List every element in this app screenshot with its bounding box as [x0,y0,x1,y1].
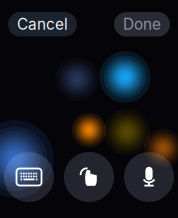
button[interactable]: Cancel [8,12,77,37]
staticText: Done [123,15,161,34]
button[interactable]: Scribble [64,152,114,202]
button[interactable]: Dictation [124,152,174,202]
button[interactable]: Keyboard [4,152,54,202]
staticText: Cancel [17,15,68,34]
button[interactable]: Done [114,12,170,37]
